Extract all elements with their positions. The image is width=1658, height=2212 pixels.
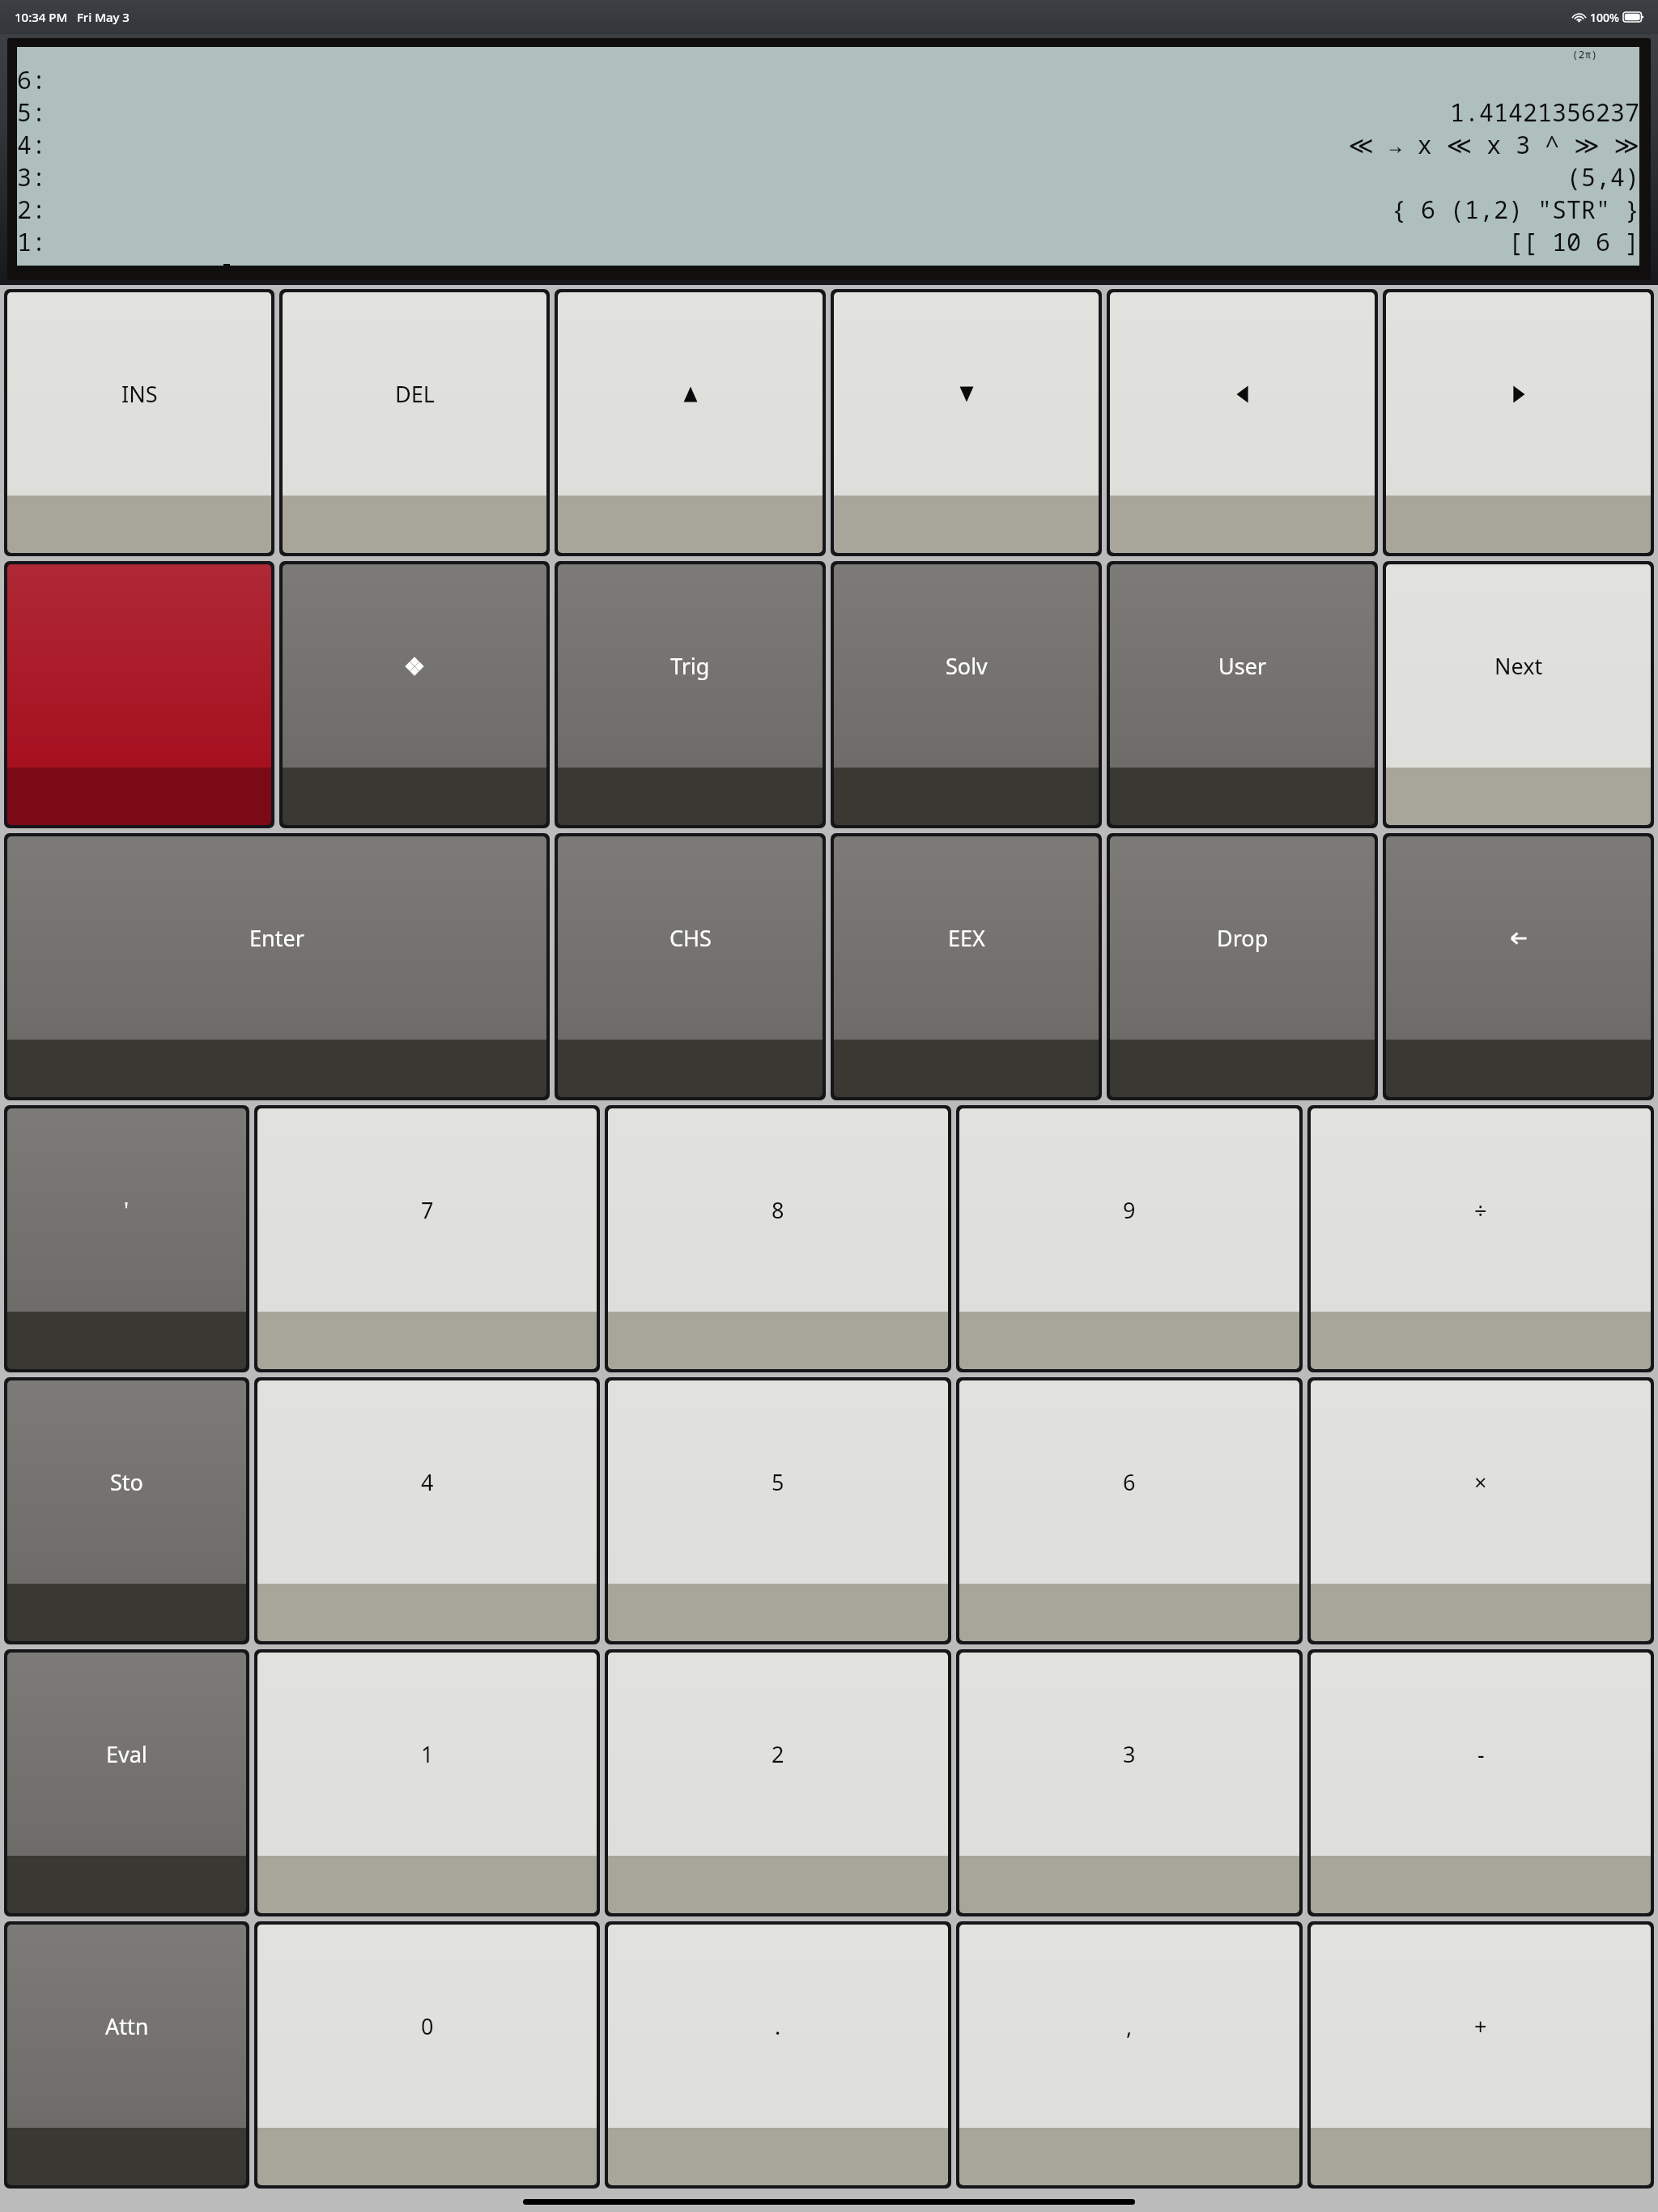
- staticText: (2π): [17, 47, 1597, 62]
- staticText: Attn: [105, 2011, 149, 2041]
- staticText: 2:: [17, 193, 46, 225]
- button[interactable]: -: [1311, 1653, 1651, 1913]
- button[interactable]: Down: [834, 292, 1099, 553]
- staticText: ÷: [1474, 1195, 1487, 1225]
- button[interactable]: Shift: [7, 564, 271, 825]
- staticText: Solv: [946, 651, 988, 681]
- button[interactable]: User: [1110, 564, 1375, 825]
- staticText: -: [1477, 1739, 1485, 1769]
- staticText: 5:: [17, 96, 46, 128]
- staticText: ,: [1126, 2011, 1133, 2041]
- staticText: 8: [772, 1195, 784, 1225]
- button[interactable]: ': [7, 1108, 246, 1369]
- button[interactable]: Right: [1386, 292, 1651, 553]
- button[interactable]: +: [1311, 1925, 1651, 2185]
- button[interactable]: ,: [959, 1925, 1299, 2185]
- button[interactable]: ÷: [1311, 1108, 1651, 1369]
- button[interactable]: 5: [608, 1380, 948, 1641]
- button[interactable]: Up: [558, 292, 823, 553]
- button[interactable]: Left: [1110, 292, 1375, 553]
- staticText: 10:34 PM Fri May 3: [15, 9, 130, 25]
- staticText: 100%: [1590, 10, 1619, 25]
- staticText: (5,4): [1567, 160, 1639, 193]
- staticText: 4:: [17, 128, 46, 160]
- staticText: 6: [1123, 1467, 1136, 1497]
- staticText: EEX: [948, 923, 985, 953]
- staticText: 6:: [17, 63, 46, 96]
- button[interactable]: CHS: [558, 836, 823, 1097]
- button[interactable]: 9: [959, 1108, 1299, 1369]
- button[interactable]: DEL: [283, 292, 546, 553]
- button[interactable]: ×: [1311, 1380, 1651, 1641]
- staticText: Drop: [1217, 923, 1269, 953]
- staticText: 2: [772, 1739, 784, 1769]
- staticText: Sto: [110, 1467, 143, 1497]
- button[interactable]: 6: [959, 1380, 1299, 1641]
- button[interactable]: INS: [7, 292, 271, 553]
- button[interactable]: Modes: [283, 564, 546, 825]
- button[interactable]: Trig: [558, 564, 823, 825]
- staticText: ×: [1474, 1467, 1487, 1497]
- staticText: 0: [421, 2011, 434, 2041]
- button[interactable]: 8: [608, 1108, 948, 1369]
- button[interactable]: 3: [959, 1653, 1299, 1913]
- staticText: 5: [772, 1467, 784, 1497]
- staticText: 3:: [17, 160, 46, 193]
- button[interactable]: 4: [257, 1380, 597, 1641]
- button[interactable]: Drop: [1110, 836, 1375, 1097]
- button[interactable]: EEX: [834, 836, 1099, 1097]
- staticText: Eval: [106, 1739, 147, 1769]
- button[interactable]: Attn: [7, 1925, 246, 2185]
- staticText: +: [1474, 2011, 1487, 2041]
- button[interactable]: Backspace: [1386, 836, 1651, 1097]
- staticText: [[ 10 6 ]: [1508, 225, 1639, 257]
- staticText: CHS: [670, 923, 712, 953]
- staticText: Next: [1494, 651, 1543, 681]
- staticText: ': [124, 1195, 130, 1225]
- staticText: Trig: [670, 651, 710, 681]
- button[interactable]: Next: [1386, 564, 1651, 825]
- button[interactable]: Eval: [7, 1653, 246, 1913]
- staticText: { 6 (1,2) "STR" }: [1392, 193, 1639, 225]
- staticText: 9: [1123, 1195, 1136, 1225]
- button[interactable]: 2: [608, 1653, 948, 1913]
- staticText: 7: [421, 1195, 434, 1225]
- staticText: User: [1218, 651, 1267, 681]
- button[interactable]: 0: [257, 1925, 597, 2185]
- button[interactable]: 7: [257, 1108, 597, 1369]
- staticText: 1: [421, 1739, 434, 1769]
- button[interactable]: Solv: [834, 564, 1099, 825]
- button[interactable]: Enter: [7, 836, 546, 1097]
- staticText: 1:: [17, 225, 46, 257]
- button[interactable]: 1: [257, 1653, 597, 1913]
- staticText: 4: [421, 1467, 434, 1497]
- button[interactable]: Sto: [7, 1380, 246, 1641]
- staticText: .: [775, 2011, 781, 2041]
- staticText: ≪ → x ≪ x 3 ^ ≫ ≫: [1348, 128, 1639, 160]
- staticText: INS: [121, 379, 158, 409]
- staticText: DEL: [395, 379, 435, 409]
- staticText: 3: [1123, 1739, 1136, 1769]
- button[interactable]: .: [608, 1925, 948, 2185]
- staticText: 1.41421356237: [1450, 96, 1639, 128]
- staticText: Enter: [249, 923, 304, 953]
